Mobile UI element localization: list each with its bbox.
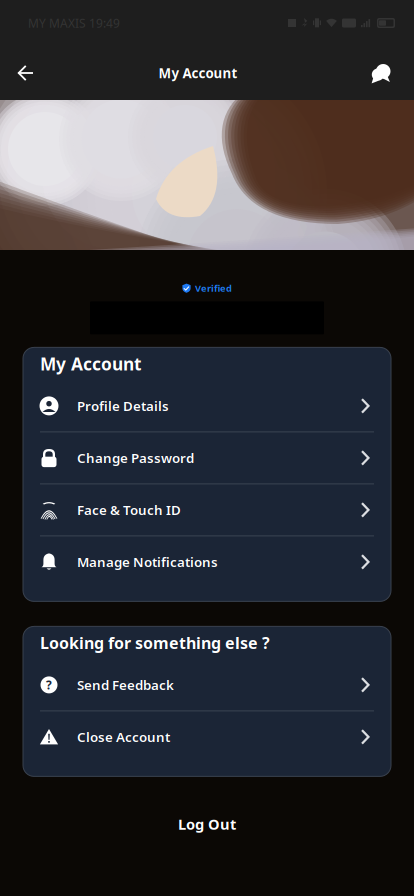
staticText: Close Account <box>77 728 170 746</box>
button[interactable]: Back <box>1 49 49 97</box>
button[interactable]: Close Account <box>23 711 391 762</box>
staticText: Profile Details <box>77 397 169 415</box>
staticText: Log Out <box>178 814 236 834</box>
staticText: ? <box>46 677 52 693</box>
button[interactable]: ? <box>23 659 391 710</box>
button[interactable]: Profile Details <box>23 380 391 431</box>
staticText: Send Feedback <box>77 676 174 694</box>
staticText: MY MAXIS 19:49 <box>28 15 120 31</box>
staticText: Manage Notifications <box>77 553 218 571</box>
staticText: Face & Touch ID <box>77 501 181 519</box>
staticText: Verified <box>195 282 232 294</box>
button[interactable]: Face & Touch ID <box>23 484 391 535</box>
staticText: Looking for something else ? <box>40 632 270 653</box>
button[interactable]: Messages <box>357 49 405 97</box>
button[interactable]: Manage Notifications <box>23 536 391 587</box>
staticText: Change Password <box>77 449 194 467</box>
staticText: My Account <box>158 64 237 82</box>
staticText: My Account <box>40 352 142 375</box>
button[interactable]: Log Out <box>138 802 276 846</box>
button[interactable]: Change Password <box>23 432 391 483</box>
